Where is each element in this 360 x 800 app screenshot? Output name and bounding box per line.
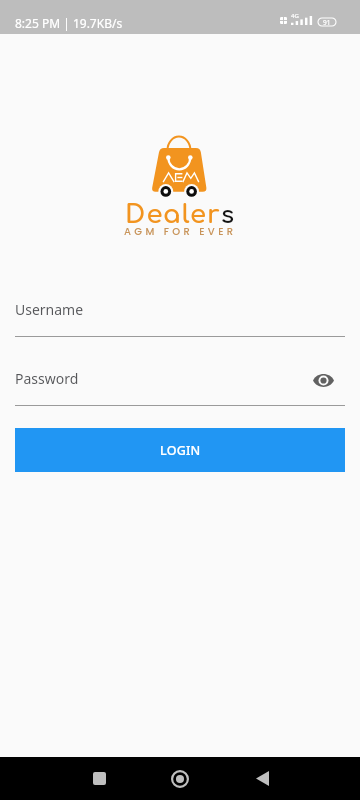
button[interactable]: Back xyxy=(242,757,282,800)
staticText: 8:25 PM | 19.7KB/s xyxy=(15,15,123,31)
button[interactable]: Recents xyxy=(79,757,119,800)
staticText: Username xyxy=(15,300,84,319)
staticText: AGM FOR EVER xyxy=(124,224,237,238)
button[interactable]: Home xyxy=(160,757,200,800)
staticText: LOGIN xyxy=(160,442,201,459)
staticText: Password xyxy=(15,369,79,388)
button[interactable]: Show password xyxy=(308,365,338,395)
staticText: s xyxy=(221,202,235,229)
staticText: Dealer xyxy=(125,200,221,229)
staticText: 4G xyxy=(291,12,299,20)
staticText: 91 xyxy=(323,18,331,26)
button[interactable]: LOGIN xyxy=(15,428,345,472)
